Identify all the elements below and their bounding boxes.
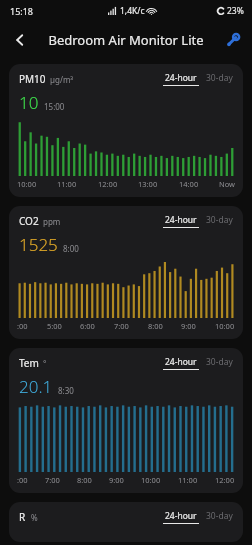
staticText: 1525 xyxy=(19,233,58,256)
staticText: 1,4K/c xyxy=(120,5,145,17)
staticText: 10:00 xyxy=(17,179,37,189)
staticText: 12:00 xyxy=(98,179,118,189)
staticText: 30-day xyxy=(206,214,233,226)
staticText: ppm xyxy=(43,216,61,227)
button[interactable]: CO2 xyxy=(9,206,243,339)
staticText: 7:00 xyxy=(114,321,129,331)
staticText: 30-day xyxy=(206,356,233,368)
button[interactable]: 24-hour xyxy=(163,510,199,524)
staticText: 12:00 xyxy=(215,475,235,485)
staticText: Now xyxy=(219,179,235,189)
staticText: 8:00 xyxy=(148,321,163,331)
staticText: 8:00 xyxy=(77,475,92,485)
staticText: 10 xyxy=(19,91,39,114)
button[interactable]: 24-hour xyxy=(163,214,199,228)
staticText: 6:00 xyxy=(80,321,95,331)
staticText: :00 xyxy=(17,475,28,485)
staticText: 9:00 xyxy=(109,475,124,485)
staticText: 10:00 xyxy=(141,475,161,485)
button[interactable]: 30-day xyxy=(206,72,233,86)
staticText: R xyxy=(19,510,26,524)
staticText: 24-hour xyxy=(165,72,197,84)
button[interactable]: 24-hour xyxy=(163,356,199,370)
staticText: 10:00 xyxy=(215,321,235,331)
staticText: :00 xyxy=(17,321,28,331)
staticText: 24-hour xyxy=(165,214,197,226)
staticText: µg/m³ xyxy=(50,74,74,85)
staticText: 15:18 xyxy=(10,5,34,17)
button[interactable]: R xyxy=(9,502,243,542)
staticText: PM10 xyxy=(19,72,46,86)
button[interactable]: PM10 xyxy=(9,64,243,197)
button[interactable]: 30-day xyxy=(206,356,233,370)
button[interactable]: Back xyxy=(4,24,36,56)
button[interactable]: Tem xyxy=(9,348,243,493)
staticText: 7:00 xyxy=(45,475,60,485)
staticText: 14:00 xyxy=(179,179,199,189)
staticText: 30-day xyxy=(206,72,233,84)
button[interactable]: 24-hour xyxy=(163,72,199,86)
staticText: 15:00 xyxy=(44,101,65,112)
staticText: % xyxy=(31,512,38,523)
staticText: 30-day xyxy=(206,510,233,522)
staticText: 8:30 xyxy=(58,385,74,396)
staticText: 11:00 xyxy=(178,475,198,485)
staticText: CO2 xyxy=(19,214,39,228)
staticText: 23% xyxy=(227,5,244,17)
staticText: ° xyxy=(43,358,47,369)
staticText: 9:00 xyxy=(181,321,196,331)
button[interactable]: 30-day xyxy=(206,214,233,228)
staticText: 5:00 xyxy=(47,321,62,331)
staticText: 11:00 xyxy=(57,179,77,189)
button[interactable]: 30-day xyxy=(206,510,233,524)
staticText: Bedroom Air Monitor Lite xyxy=(48,31,204,49)
staticText: Tem xyxy=(19,356,39,370)
staticText: 24-hour xyxy=(165,356,197,368)
staticText: 8:00 xyxy=(63,243,79,254)
staticText: 20.1 xyxy=(19,375,53,398)
staticText: 24-hour xyxy=(165,510,197,522)
button[interactable]: Settings xyxy=(217,25,247,55)
staticText: 13:00 xyxy=(138,179,158,189)
